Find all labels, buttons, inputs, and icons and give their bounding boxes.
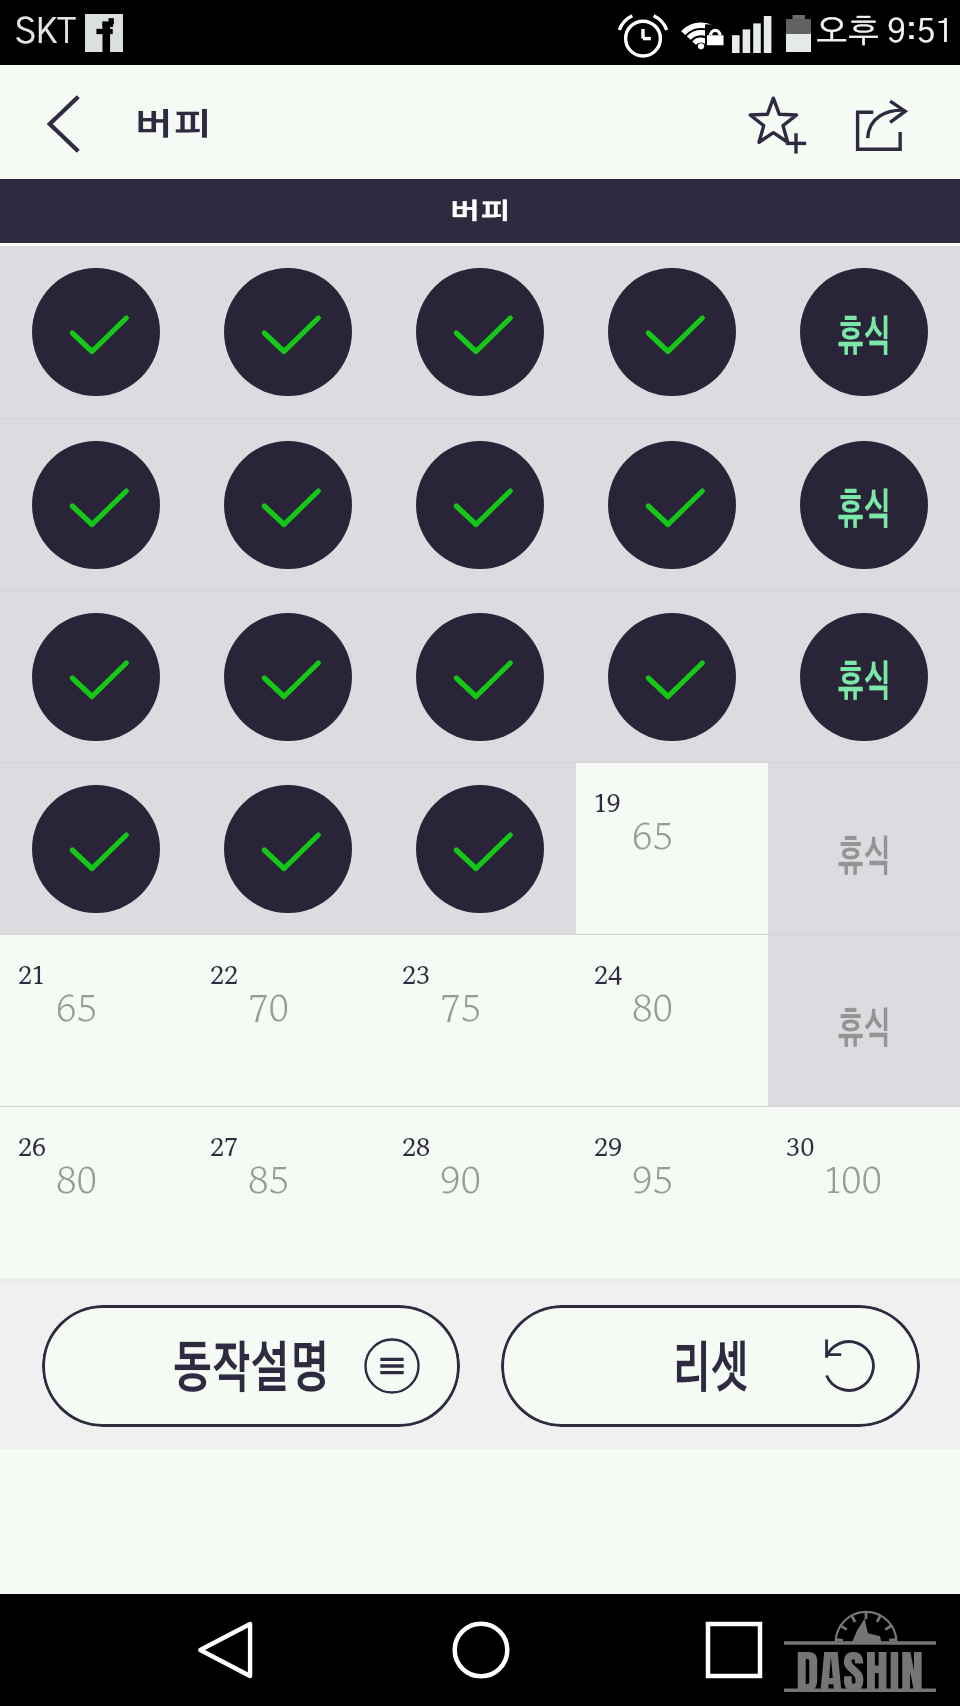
- staticText: SKT: [15, 16, 76, 50]
- button[interactable]: [0, 591, 192, 762]
- button[interactable]: 30: [768, 1107, 960, 1278]
- button[interactable]: 26: [0, 1107, 192, 1278]
- staticText: 90: [440, 1152, 482, 1207]
- staticText: 휴식: [837, 317, 890, 359]
- staticText: 오후 9:51: [816, 16, 954, 49]
- staticText: 동작설명: [173, 1343, 329, 1398]
- staticText: 버피: [134, 110, 212, 141]
- button[interactable]: 동작설명: [42, 1305, 460, 1427]
- button[interactable]: 휴식: [768, 591, 960, 762]
- staticText: 70: [248, 980, 290, 1035]
- button[interactable]: 휴식: [768, 419, 960, 590]
- staticText: 24: [594, 957, 623, 993]
- staticText: 27: [210, 1129, 239, 1165]
- staticText: 21: [18, 957, 45, 993]
- button[interactable]: [576, 419, 768, 590]
- staticText: 65: [632, 808, 674, 863]
- button[interactable]: [192, 591, 384, 762]
- button[interactable]: [0, 763, 192, 934]
- staticText: 100: [824, 1152, 883, 1207]
- button[interactable]: 휴식: [768, 246, 960, 418]
- button[interactable]: Home: [426, 1594, 536, 1706]
- staticText: 휴식: [837, 1009, 890, 1051]
- button[interactable]: 22: [192, 935, 384, 1106]
- button[interactable]: Add to favourites: [728, 65, 828, 179]
- staticText: 19: [594, 785, 621, 821]
- button[interactable]: [384, 246, 576, 418]
- staticText: 80: [56, 1152, 98, 1207]
- staticText: 휴식: [837, 837, 890, 879]
- staticText: 95: [632, 1152, 674, 1207]
- button[interactable]: 27: [192, 1107, 384, 1278]
- button[interactable]: 28: [384, 1107, 576, 1278]
- staticText: 휴식: [837, 490, 890, 532]
- button[interactable]: [384, 591, 576, 762]
- staticText: 22: [210, 957, 239, 993]
- button[interactable]: [0, 246, 192, 418]
- staticText: 버피: [449, 201, 511, 224]
- button[interactable]: 21: [0, 935, 192, 1106]
- staticText: DASHIN: [796, 1637, 925, 1691]
- button[interactable]: [0, 419, 192, 590]
- button[interactable]: Back: [0, 65, 126, 179]
- button[interactable]: [384, 763, 576, 934]
- button[interactable]: [192, 763, 384, 934]
- button[interactable]: [192, 419, 384, 590]
- button[interactable]: 23: [384, 935, 576, 1106]
- staticText: 85: [248, 1152, 290, 1207]
- button[interactable]: Recents: [679, 1594, 789, 1706]
- button[interactable]: Share: [828, 65, 932, 179]
- staticText: 75: [440, 980, 482, 1035]
- button[interactable]: 19: [576, 763, 768, 934]
- staticText: 65: [56, 980, 98, 1035]
- staticText: 휴식: [837, 662, 890, 704]
- button[interactable]: [576, 246, 768, 418]
- button[interactable]: 휴식: [768, 935, 960, 1106]
- button[interactable]: 24: [576, 935, 768, 1106]
- staticText: 26: [18, 1129, 47, 1165]
- staticText: 28: [402, 1129, 431, 1165]
- button[interactable]: 리셋: [501, 1305, 920, 1427]
- button[interactable]: 29: [576, 1107, 768, 1278]
- button[interactable]: [576, 591, 768, 762]
- staticText: 23: [402, 957, 431, 993]
- button[interactable]: 휴식: [768, 763, 960, 934]
- button[interactable]: [384, 419, 576, 590]
- button[interactable]: [192, 246, 384, 418]
- staticText: 80: [632, 980, 674, 1035]
- button[interactable]: Back: [171, 1594, 281, 1706]
- staticText: 30: [786, 1129, 816, 1165]
- staticText: 리셋: [672, 1343, 750, 1398]
- staticText: 29: [594, 1129, 623, 1165]
